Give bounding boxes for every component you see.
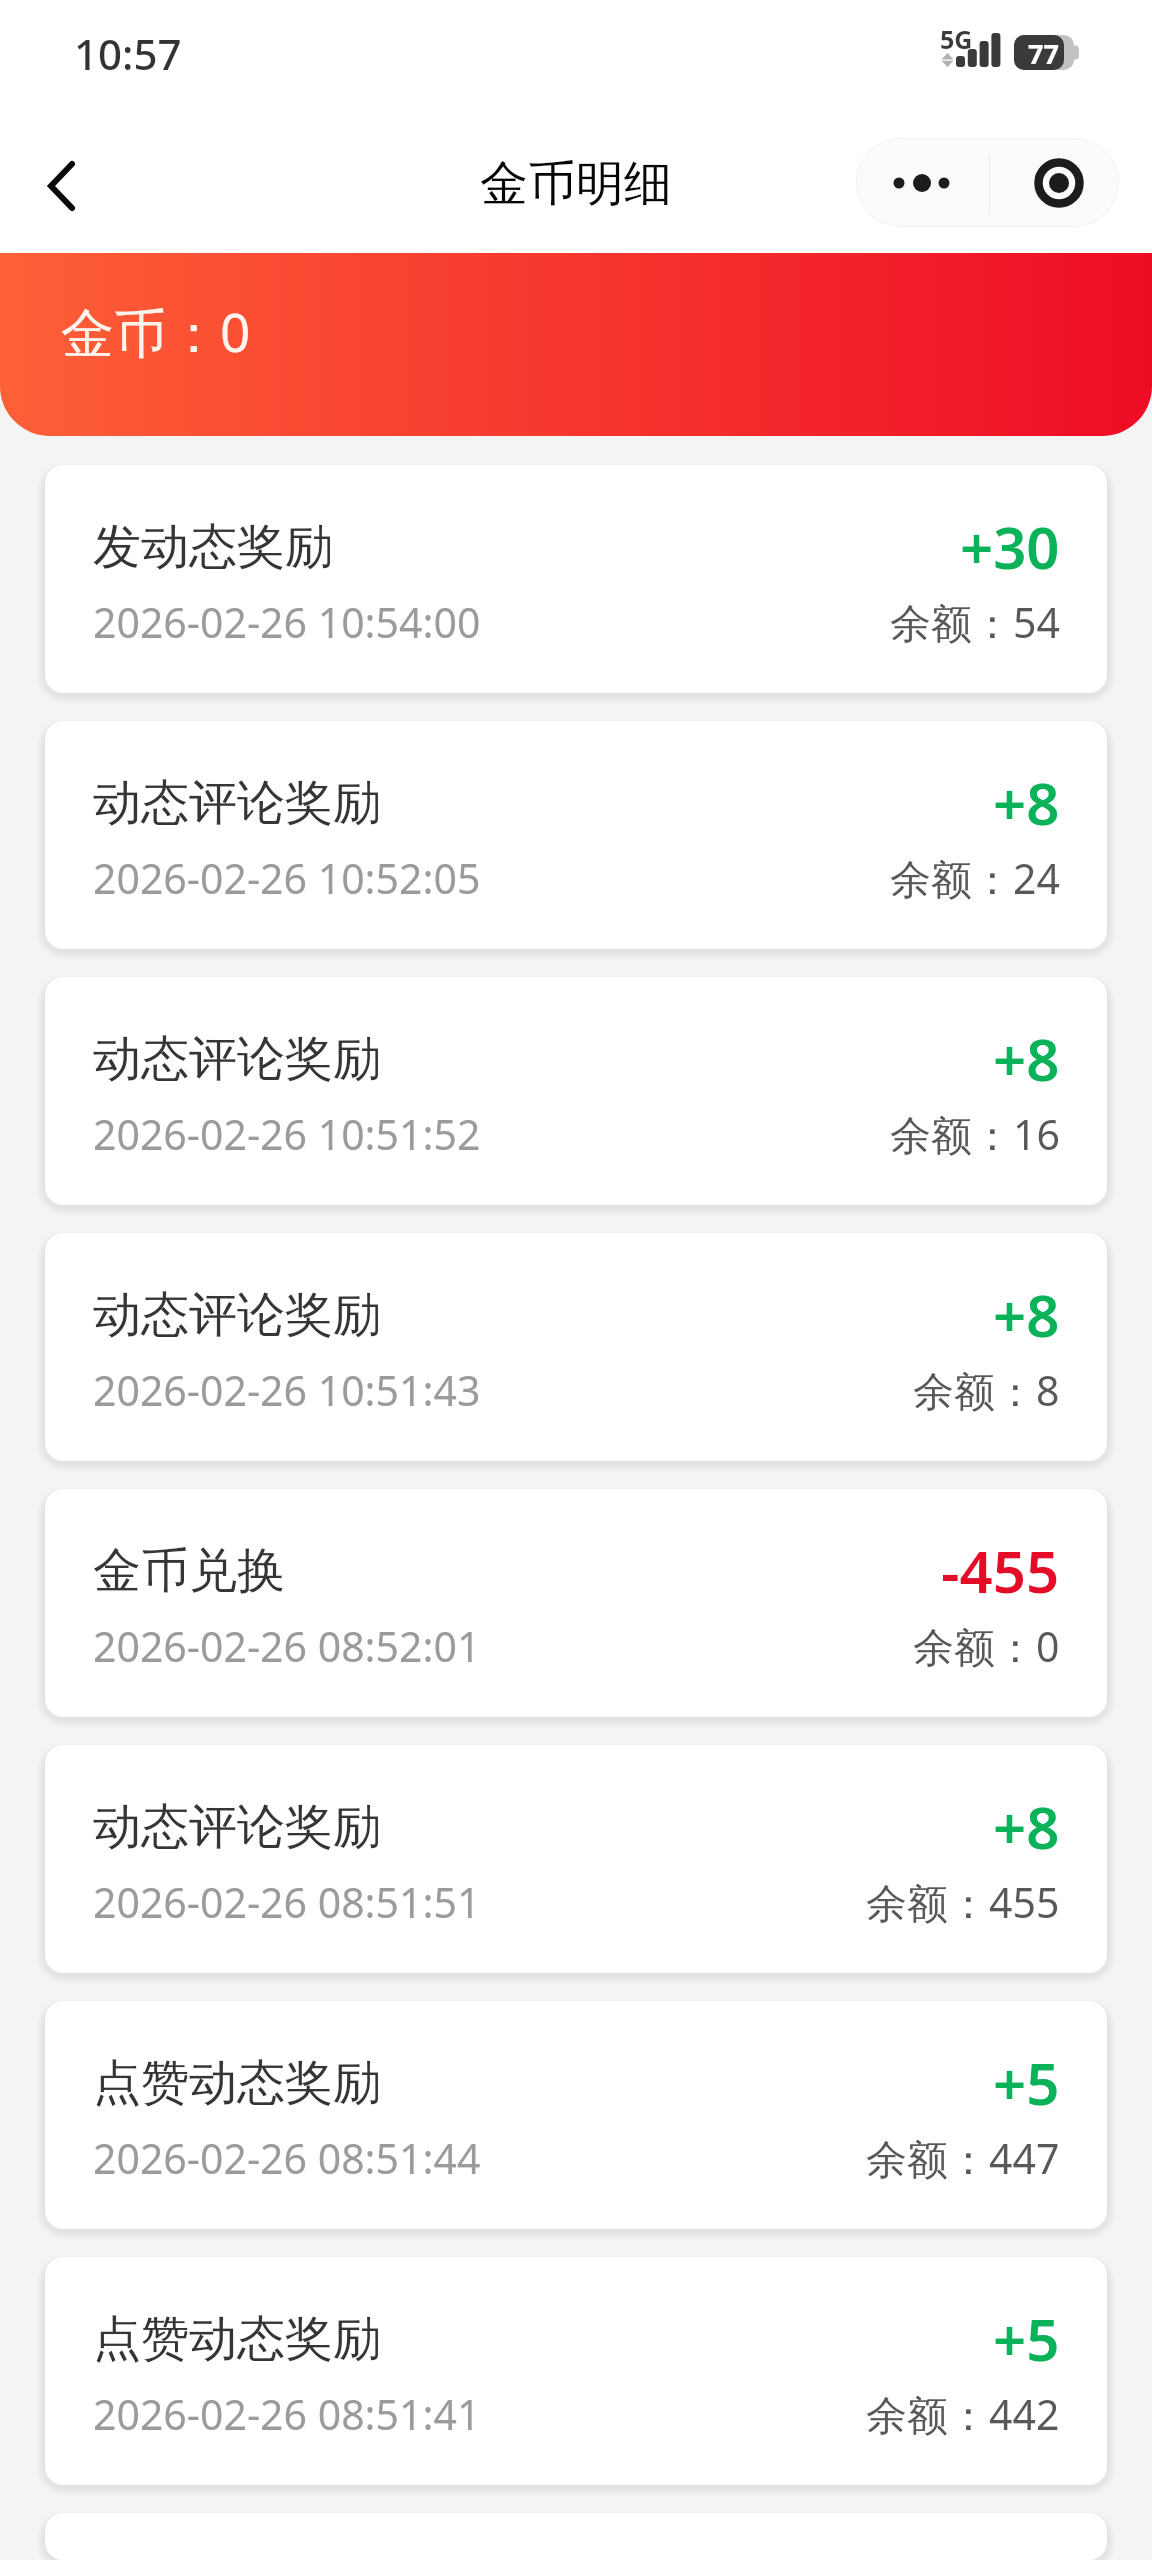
- staticText: 动态评论奖励: [93, 1285, 381, 1345]
- staticText: 余额：455: [866, 1874, 1060, 1930]
- button[interactable]: 动态评论奖励: [45, 721, 1107, 949]
- button[interactable]: 动态评论奖励: [45, 977, 1107, 1205]
- button[interactable]: More options: [856, 138, 989, 227]
- staticText: 点赞动态奖励: [93, 2053, 381, 2113]
- staticText: 发动态奖励: [93, 517, 333, 577]
- staticText: +8: [993, 1275, 1060, 1354]
- button[interactable]: 发动态奖励: [45, 465, 1107, 693]
- button[interactable]: 金币兑换: [45, 1489, 1107, 1717]
- staticText: 2026-02-26 08:51:41: [93, 2386, 481, 2442]
- button[interactable]: 动态评论奖励: [45, 1233, 1107, 1461]
- staticText: 10:57: [74, 25, 182, 82]
- staticText: +5: [993, 2299, 1060, 2378]
- staticText: +8: [993, 1019, 1060, 1098]
- staticText: 金币：0: [61, 295, 251, 367]
- staticText: 余额：442: [866, 2386, 1060, 2442]
- staticText: 2026-02-26 08:52:01: [93, 1618, 481, 1674]
- staticText: +5: [993, 2043, 1060, 2122]
- button[interactable]: Back: [0, 108, 120, 253]
- staticText: 余额：16: [890, 1106, 1060, 1162]
- staticText: 5G: [940, 22, 973, 56]
- staticText: 2026-02-26 10:51:43: [93, 1362, 481, 1418]
- button[interactable]: 动态评论奖励: [45, 1745, 1107, 1973]
- staticText: 动态评论奖励: [93, 1029, 381, 1089]
- staticText: 余额：24: [890, 850, 1060, 906]
- staticText: 2026-02-26 08:51:51: [93, 1874, 481, 1930]
- button[interactable]: 金币：0: [0, 253, 1152, 436]
- staticText: 余额：0: [913, 1618, 1060, 1674]
- staticText: 余额：8: [913, 1362, 1060, 1418]
- staticText: 点赞动态奖励: [93, 2309, 381, 2369]
- staticText: 2026-02-26 10:52:05: [93, 850, 481, 906]
- staticText: 余额：54: [890, 594, 1060, 650]
- staticText: +8: [993, 1787, 1060, 1866]
- staticText: 动态评论奖励: [93, 773, 381, 833]
- staticText: 2026-02-26 08:51:44: [93, 2130, 481, 2186]
- staticText: -455: [941, 1531, 1060, 1610]
- staticText: 动态评论奖励: [93, 1797, 381, 1857]
- staticText: 2026-02-26 10:54:00: [93, 594, 481, 650]
- staticText: 2026-02-26 10:51:52: [93, 1106, 481, 1162]
- staticText: +8: [993, 763, 1060, 842]
- button[interactable]: 点赞动态奖励: [45, 2257, 1107, 2485]
- staticText: 金币兑换: [93, 1541, 285, 1601]
- staticText: +30: [960, 507, 1060, 586]
- staticText: 77: [1028, 35, 1059, 70]
- button[interactable]: 点赞动态奖励: [45, 2001, 1107, 2229]
- button[interactable]: Close mini program: [990, 138, 1119, 227]
- staticText: 金币明细: [480, 154, 672, 214]
- staticText: 余额：447: [866, 2130, 1060, 2186]
